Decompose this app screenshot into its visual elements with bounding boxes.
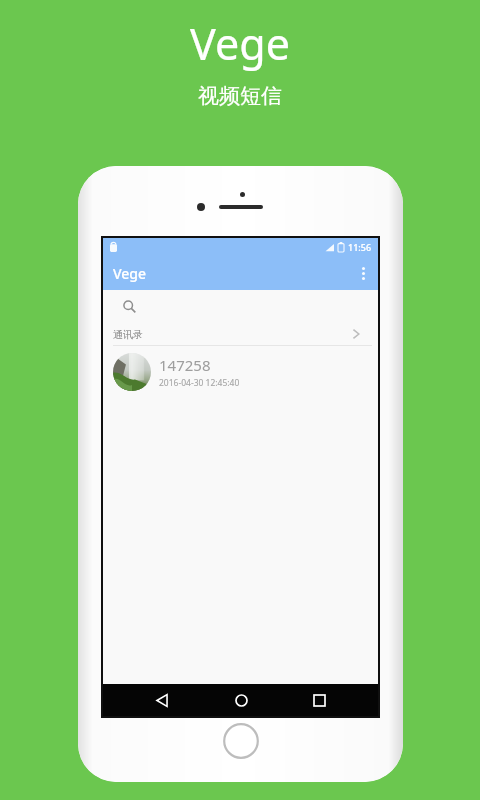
button[interactable]: Recent apps [299,684,339,716]
button[interactable]: Back [142,684,182,716]
staticText: Vege [190,14,290,73]
button[interactable]: 147258 [113,346,378,398]
button[interactable]: Home [221,684,261,716]
staticText: 通讯录 [113,328,143,341]
staticText: 11:56 [348,241,372,253]
staticText: 2016-04-30 12:45:40 [159,377,240,389]
button[interactable]: Home button [223,723,259,759]
staticText: 147258 [159,355,211,375]
staticText: Vege [113,264,147,283]
staticText: 视频短信 [198,83,282,109]
button[interactable]: More options [348,256,378,290]
button[interactable]: Vege [103,256,378,290]
button[interactable]: Search [103,290,378,322]
button[interactable]: 通讯录 [103,322,378,346]
